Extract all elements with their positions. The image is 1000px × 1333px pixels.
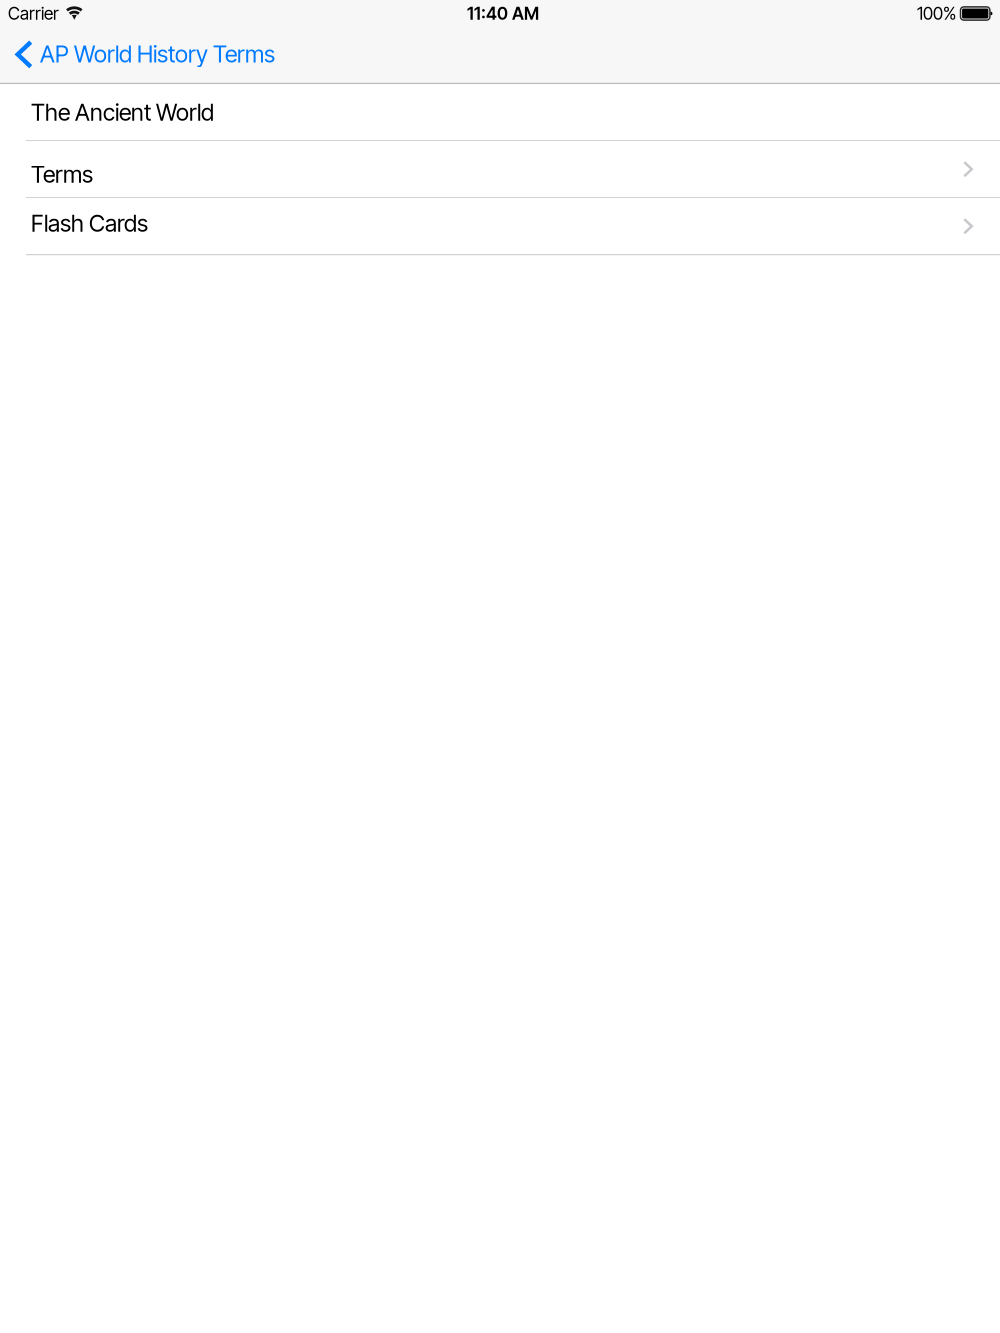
staticText: Terms: [31, 160, 93, 188]
staticText: 11:40 AM: [467, 3, 539, 24]
button[interactable]: Flash Cards: [0, 198, 1000, 255]
button[interactable]: Terms: [0, 141, 1000, 198]
button[interactable]: AP World History Terms: [0, 27, 289, 83]
staticText: The Ancient World: [31, 98, 214, 126]
staticText: AP World History Terms: [40, 40, 275, 68]
button[interactable]: The Ancient World: [0, 84, 1000, 141]
staticText: 100%: [917, 3, 956, 24]
staticText: Carrier: [8, 3, 59, 24]
staticText: Flash Cards: [31, 209, 148, 237]
